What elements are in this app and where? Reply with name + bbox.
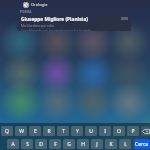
staticText: E (34, 128, 37, 135)
button[interactable]: R (43, 126, 55, 136)
staticText: W (19, 128, 24, 135)
button[interactable]: E (29, 126, 41, 136)
staticText: Y (76, 128, 79, 135)
button[interactable]: A (7, 139, 19, 149)
staticText: D (39, 141, 43, 148)
staticText: Cose Mirando, poi la sospettazione fra l… (21, 29, 92, 31)
staticText: H (81, 141, 85, 148)
button[interactable]: Y (71, 126, 83, 136)
staticText: U (89, 128, 93, 135)
button[interactable]: T (57, 126, 69, 136)
staticText: Ma Giordano poi colto (21, 24, 55, 28)
staticText: T (62, 128, 65, 135)
button[interactable]: U (85, 126, 97, 136)
button[interactable]: J (91, 139, 103, 149)
staticText: P (131, 128, 135, 135)
staticText: L (124, 141, 127, 148)
staticText: POESIA (20, 10, 32, 14)
staticText: R (47, 128, 51, 135)
button[interactable]: S (21, 139, 33, 149)
button[interactable]: Orologio (0, 1, 150, 8)
staticText: K (109, 141, 113, 148)
button[interactable]: Cerca (134, 139, 150, 149)
button[interactable]: L (119, 139, 131, 149)
staticText: A (11, 141, 15, 148)
staticText: O (117, 128, 121, 135)
button[interactable]: P (127, 126, 139, 136)
button[interactable]: H (77, 139, 89, 149)
staticText: I (104, 128, 106, 135)
staticText: S (26, 141, 29, 148)
staticText: Giuseppe Migliore (Pianista) (21, 16, 88, 23)
button[interactable]: K (105, 139, 117, 149)
button[interactable]: I (99, 126, 111, 136)
staticText: G (67, 141, 71, 148)
staticText: F (54, 141, 57, 148)
button[interactable]: Backspace (141, 126, 150, 136)
staticText: J (96, 141, 98, 148)
button[interactable]: D (35, 139, 47, 149)
staticText: Cerca (135, 141, 149, 148)
button[interactable]: G (63, 139, 75, 149)
staticText: Orologio (31, 2, 48, 7)
button[interactable]: F (49, 139, 61, 149)
staticText: Q (5, 128, 9, 135)
button[interactable]: Giuseppe Migliore (Pianista) (17, 15, 131, 31)
button[interactable]: W (15, 126, 27, 136)
button[interactable]: O (113, 126, 125, 136)
button[interactable]: Q (1, 126, 13, 136)
